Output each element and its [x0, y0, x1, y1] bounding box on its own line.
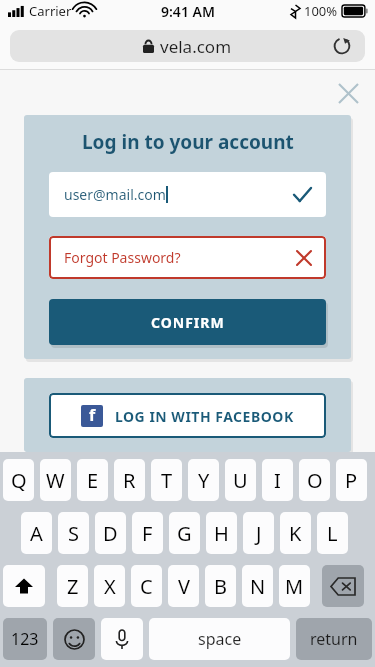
staticText: X [104, 573, 116, 600]
staticText: L [327, 520, 338, 547]
staticText: Carrier [29, 2, 72, 20]
staticText: S [68, 520, 79, 547]
button[interactable]: f [49, 393, 326, 438]
staticText: C [140, 573, 153, 600]
button[interactable]: U [225, 459, 256, 501]
button[interactable]: E [77, 459, 108, 501]
button[interactable]: Close [333, 78, 363, 108]
button[interactable]: G [169, 512, 200, 554]
staticText: I [274, 467, 281, 494]
staticText: N [250, 573, 266, 600]
button[interactable]: C [131, 565, 162, 607]
button[interactable]: space [149, 618, 290, 660]
button[interactable]: J [243, 512, 274, 554]
button[interactable]: S [58, 512, 89, 554]
button[interactable]: Dictation [101, 618, 143, 660]
staticText: Z [67, 573, 79, 600]
button[interactable]: H [206, 512, 237, 554]
button[interactable]: A [21, 512, 52, 554]
staticText: D [103, 520, 118, 547]
staticText: G [177, 520, 192, 547]
staticText: space [198, 628, 242, 650]
button[interactable]: user@mail.com [49, 172, 326, 217]
staticText: return [310, 628, 358, 650]
staticText: K [289, 520, 302, 547]
staticText: user@mail.com [64, 185, 166, 204]
staticText: CONFIRM [151, 313, 225, 332]
button[interactable]: return [296, 618, 372, 660]
button[interactable]: O [299, 459, 330, 501]
staticText: B [214, 573, 227, 600]
staticText: T [161, 467, 173, 494]
button[interactable]: Reload page [329, 33, 355, 59]
staticText: 123 [11, 628, 39, 650]
staticText: LOG IN WITH FACEBOOK [115, 407, 294, 426]
staticText: W [46, 467, 65, 494]
button[interactable]: W [40, 459, 71, 501]
button[interactable]: Shift [3, 565, 45, 607]
button[interactable]: F [132, 512, 163, 554]
staticText: A [30, 520, 43, 547]
button[interactable]: D [95, 512, 126, 554]
staticText: Log in to your account [82, 129, 294, 155]
button[interactable]: Z [57, 565, 88, 607]
staticText: 100% [304, 2, 338, 20]
button[interactable]: vela.com [10, 30, 365, 62]
staticText: R [123, 467, 136, 494]
button[interactable]: Backspace [322, 565, 364, 607]
staticText: Q [11, 467, 27, 494]
button[interactable]: I [262, 459, 293, 501]
staticText: vela.com [160, 35, 232, 58]
button[interactable]: N [242, 565, 273, 607]
staticText: U [233, 467, 248, 494]
button[interactable]: M [279, 565, 310, 607]
button[interactable]: 123 [3, 618, 47, 660]
staticText: F [142, 520, 153, 547]
button[interactable]: Forgot Password? [49, 236, 326, 279]
staticText: f [89, 405, 96, 426]
staticText: Forgot Password? [64, 248, 181, 267]
button[interactable]: Q [3, 459, 34, 501]
button[interactable]: Y [188, 459, 219, 501]
button[interactable]: X [94, 565, 125, 607]
staticText: Y [198, 467, 210, 494]
button[interactable]: R [114, 459, 145, 501]
button[interactable]: P [336, 459, 367, 501]
button[interactable]: B [205, 565, 236, 607]
button[interactable]: T [151, 459, 182, 501]
staticText: 9:41 AM [161, 2, 215, 21]
staticText: V [178, 573, 190, 600]
staticText: J [256, 520, 262, 547]
button[interactable]: V [168, 565, 199, 607]
button[interactable]: K [280, 512, 311, 554]
staticText: O [307, 467, 323, 494]
staticText: H [214, 520, 229, 547]
button[interactable]: Emoji keyboard [53, 618, 95, 660]
staticText: P [345, 467, 358, 494]
staticText: E [87, 467, 99, 494]
staticText: M [285, 573, 304, 600]
button[interactable]: L [317, 512, 348, 554]
button[interactable]: CONFIRM [49, 299, 326, 345]
